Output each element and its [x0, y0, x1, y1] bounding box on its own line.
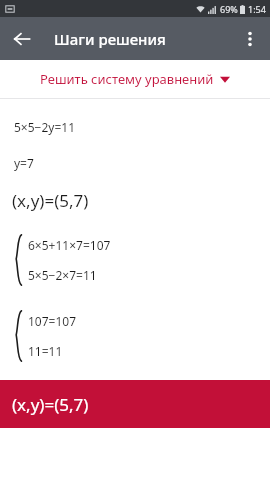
staticText: Решить систему уравнений: [40, 70, 214, 88]
staticText: 11=11: [28, 343, 63, 359]
staticText: (x,y)=(5,7): [12, 189, 89, 212]
staticText: (x,y)=(5,7): [12, 393, 89, 416]
button[interactable]: (x,y)=(5,7): [0, 380, 270, 428]
staticText: 5×5−2y=11: [14, 119, 76, 135]
staticText: 1:54: [248, 3, 266, 15]
staticText: 69%: [220, 3, 238, 15]
staticText: Шаги решения: [54, 29, 166, 49]
button[interactable]: Back: [4, 21, 40, 57]
staticText: 6×5+11×7=107: [28, 237, 111, 253]
staticText: 5×5−2×7=11: [28, 267, 97, 283]
staticText: y=7: [14, 155, 34, 171]
staticText: 107=107: [28, 313, 77, 329]
button[interactable]: Решить систему уравнений: [0, 60, 270, 98]
button[interactable]: More options: [232, 21, 268, 57]
